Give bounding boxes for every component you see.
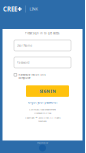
button[interactable]: Cree: [0, 0, 25, 18]
staticText: CREE: [3, 5, 17, 13]
button[interactable]: SIGN IN: [26, 85, 69, 97]
staticText: Copyright © 2018 Cree All rights: [24, 116, 60, 119]
button[interactable]: Password: [14, 57, 71, 68]
staticText: Forgot your password?: [27, 101, 57, 104]
staticText: reserved.: [38, 119, 47, 122]
staticText: Remember me on this computer: [18, 73, 45, 80]
staticText: CalixtusCloud Enablement: [29, 108, 56, 111]
staticText: licensed to Cree: [34, 111, 51, 114]
button[interactable]: Remember me on this computer: [14, 73, 17, 76]
button[interactable]: LINK: [26, 0, 40, 18]
staticText: Please sign in to get access.: [25, 31, 60, 35]
staticText: Password: [17, 60, 30, 65]
button[interactable]: Forgot your password?: [27, 101, 57, 104]
staticText: User Name: [17, 43, 33, 48]
staticText: Powered by: [37, 141, 48, 144]
button[interactable]: User Name: [14, 40, 71, 51]
staticText: SIGN IN: [39, 88, 55, 94]
staticText: LINK: [29, 6, 37, 12]
